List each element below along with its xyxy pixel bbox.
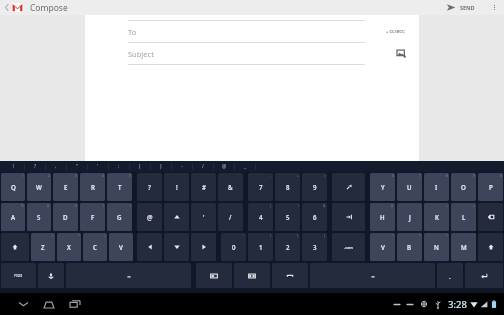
button[interactable]: 3: [302, 233, 327, 261]
button[interactable]: V: [370, 233, 395, 261]
button[interactable]: U: [397, 173, 422, 201]
button[interactable]: A: [1, 203, 25, 231]
button[interactable]: ': [88, 161, 108, 172]
button[interactable]: Subject: [128, 43, 407, 64]
staticText: /: [202, 163, 204, 170]
button[interactable]: 5: [275, 203, 300, 231]
button[interactable]: D: [53, 203, 78, 231]
staticText: 0: [500, 174, 502, 178]
staticText: V: [119, 243, 123, 251]
button[interactable]: C: [83, 233, 107, 261]
button[interactable]: V: [109, 233, 133, 261]
button[interactable]: B: [397, 233, 422, 261]
button[interactable]: 2: [275, 233, 300, 261]
button[interactable]: /: [193, 161, 213, 172]
button[interactable]: Space: [66, 263, 191, 288]
button[interactable]: .com: [332, 233, 365, 261]
button[interactable]: Shift: [1, 233, 29, 261]
staticText: 3:28: [448, 298, 467, 311]
button[interactable]: ?123: [1, 263, 36, 288]
button[interactable]: Q: [1, 173, 25, 201]
staticText: U: [407, 183, 412, 191]
button[interactable]: ": [67, 161, 87, 172]
button[interactable]: 9: [302, 173, 327, 201]
staticText: +: [446, 204, 448, 208]
button[interactable]: !: [4, 161, 24, 172]
button[interactable]: Recent apps: [62, 293, 88, 315]
button[interactable]: Split keyboard: [234, 263, 270, 288]
button[interactable]: SEND: [443, 0, 478, 15]
staticText: J: [409, 213, 411, 221]
button[interactable]: Attach image: [396, 48, 407, 59]
button[interactable]: Enter: [465, 263, 503, 288]
staticText: &: [323, 204, 326, 208]
button[interactable]: /: [218, 203, 243, 231]
button[interactable]: :: [109, 161, 129, 172]
button[interactable]: F: [80, 203, 105, 231]
staticText: C: [93, 243, 97, 251]
button[interactable]: Dock keyboard: [196, 263, 232, 288]
button[interactable]: K: [424, 203, 449, 231]
button[interactable]: Z: [31, 233, 55, 261]
button[interactable]: Float keyboard: [272, 263, 308, 288]
button[interactable]: 6: [302, 203, 327, 231]
staticText: R: [91, 183, 95, 191]
button[interactable]: G: [107, 203, 132, 231]
button[interactable]: 8: [275, 173, 300, 201]
button[interactable]: M: [451, 233, 476, 261]
button[interactable]: ): [151, 161, 171, 172]
button[interactable]: ,: [46, 161, 66, 172]
button[interactable]: Up: [164, 203, 189, 231]
button[interactable]: I: [424, 173, 449, 201]
button[interactable]: 1: [248, 233, 273, 261]
staticText: 0: [232, 243, 236, 251]
button[interactable]: ': [191, 203, 216, 231]
button[interactable]: O: [451, 173, 476, 201]
button[interactable]: 4: [248, 203, 273, 231]
staticText: 4: [102, 174, 104, 178]
button[interactable]: 0: [221, 233, 246, 261]
button[interactable]: P: [478, 173, 503, 201]
button[interactable]: #: [191, 173, 216, 201]
button[interactable]: E: [53, 173, 78, 201]
button[interactable]: Right: [191, 233, 216, 261]
button[interactable]: _: [235, 161, 255, 172]
button[interactable]: (: [130, 161, 150, 172]
button[interactable]: L: [451, 203, 476, 231]
button[interactable]: .: [437, 263, 463, 288]
button[interactable]: R: [80, 173, 105, 201]
button[interactable]: Y: [370, 173, 395, 201]
button[interactable]: J: [397, 203, 422, 231]
button[interactable]: More options: [488, 0, 500, 15]
button[interactable]: ?: [25, 161, 45, 172]
button[interactable]: X: [57, 233, 81, 261]
button[interactable]: Space: [310, 263, 435, 288]
button[interactable]: @: [137, 203, 162, 231]
button[interactable]: Voice input: [38, 263, 64, 288]
button[interactable]: 7: [248, 173, 273, 201]
button[interactable]: T: [107, 173, 132, 201]
button[interactable]: Back: [2, 0, 12, 15]
button[interactable]: + CC/BCC: [384, 27, 407, 37]
button[interactable]: To: [128, 21, 407, 42]
button[interactable]: ?: [137, 173, 162, 201]
button[interactable]: Left: [137, 233, 162, 261]
button[interactable]: Hide keyboard: [10, 293, 36, 315]
staticText: :: [118, 163, 120, 170]
button[interactable]: W: [27, 173, 51, 201]
button[interactable]: S: [27, 203, 51, 231]
button[interactable]: Backspace: [478, 203, 503, 231]
button[interactable]: -: [172, 161, 192, 172]
button[interactable]: Shift: [478, 233, 503, 261]
button[interactable]: @: [214, 161, 234, 172]
button[interactable]: Home: [36, 293, 62, 315]
button[interactable]: Tab: [332, 203, 365, 231]
button[interactable]: H: [370, 203, 395, 231]
button[interactable]: !: [164, 173, 189, 201]
button[interactable]: Down: [164, 233, 189, 261]
button[interactable]: Pin keyboard: [332, 173, 365, 201]
staticText: ,: [55, 163, 57, 170]
staticText: To: [128, 27, 137, 37]
button[interactable]: &: [218, 173, 243, 201]
button[interactable]: N: [424, 233, 449, 261]
